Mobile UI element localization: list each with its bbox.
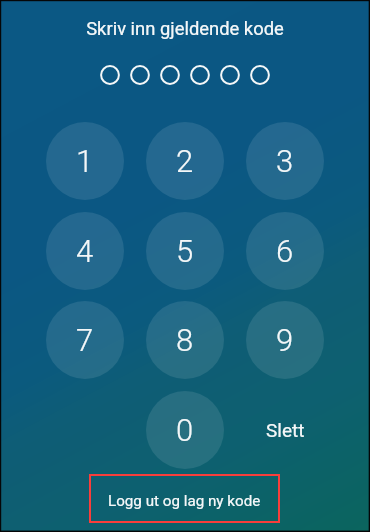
- staticText: 0: [176, 412, 194, 448]
- staticText: 4: [76, 233, 94, 269]
- button[interactable]: 2: [146, 122, 224, 200]
- button[interactable]: 1: [46, 122, 124, 200]
- button[interactable]: 5: [146, 212, 224, 290]
- staticText: 3: [276, 143, 294, 179]
- staticText: 6: [276, 233, 294, 269]
- staticText: 8: [176, 322, 194, 358]
- button[interactable]: 3: [246, 122, 324, 200]
- staticText: Slett: [266, 419, 305, 441]
- button[interactable]: 8: [146, 301, 224, 379]
- button[interactable]: Logg ut og lag ny kode: [89, 474, 280, 523]
- staticText: 9: [276, 322, 294, 358]
- staticText: Logg ut og lag ny kode: [108, 492, 261, 510]
- button[interactable]: Slett: [246, 391, 324, 469]
- staticText: Skriv inn gjeldende kode: [86, 18, 284, 40]
- staticText: 2: [176, 143, 194, 179]
- button[interactable]: 6: [246, 212, 324, 290]
- button[interactable]: 9: [246, 301, 324, 379]
- button[interactable]: 4: [46, 212, 124, 290]
- staticText: 7: [76, 322, 94, 358]
- button[interactable]: 7: [46, 301, 124, 379]
- button[interactable]: 0: [146, 391, 224, 469]
- staticText: 5: [176, 233, 194, 269]
- staticText: 1: [76, 143, 94, 179]
